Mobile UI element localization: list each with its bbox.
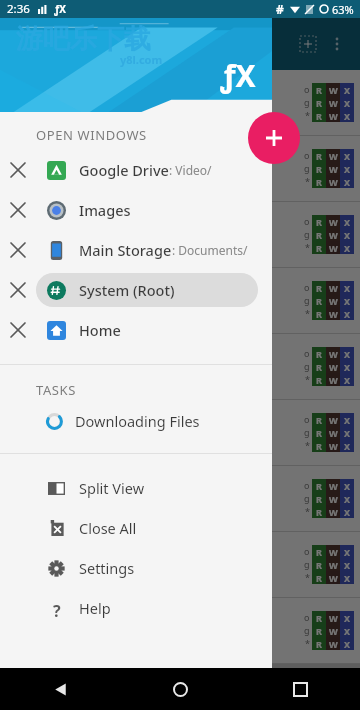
staticText: System (Root) — [79, 280, 175, 300]
staticText: X — [344, 625, 351, 637]
staticText: R — [316, 546, 322, 558]
staticText: X — [344, 572, 351, 584]
staticText: R — [316, 440, 322, 452]
staticText: R — [316, 572, 322, 584]
staticText: 63% — [332, 2, 354, 17]
staticText: R — [316, 493, 322, 505]
staticText: y8l.com — [120, 52, 163, 67]
button[interactable]: Close Google Drive — [0, 150, 272, 190]
staticText: R — [316, 163, 322, 175]
staticText: g — [304, 558, 310, 571]
staticText: g — [304, 492, 310, 505]
staticText: W — [329, 361, 338, 373]
staticText: R — [316, 374, 322, 386]
staticText: X — [344, 559, 351, 571]
staticText: g — [304, 96, 310, 109]
staticText: W — [329, 612, 338, 624]
staticText: * — [305, 439, 310, 452]
staticText: W — [329, 229, 338, 241]
staticText: o — [304, 545, 310, 558]
staticText: Main Storage — [79, 240, 172, 260]
staticText: g — [304, 228, 310, 241]
staticText: Google Drive — [79, 160, 169, 180]
button[interactable]: Home — [120, 668, 240, 710]
staticText: X — [344, 282, 351, 294]
staticText: W — [329, 625, 338, 637]
button[interactable]: ? — [0, 588, 272, 628]
button[interactable]: Close All — [0, 508, 272, 548]
staticText: X — [344, 427, 351, 439]
staticText: g — [304, 624, 310, 637]
staticText: o — [304, 215, 310, 228]
button[interactable]: o — [0, 334, 360, 399]
button[interactable]: Close System (Root) — [0, 270, 272, 310]
staticText: Home — [79, 320, 121, 340]
staticText: X — [344, 480, 351, 492]
button[interactable]: o — [0, 268, 360, 333]
button[interactable]: Close System (Root) — [0, 270, 36, 310]
staticText: X — [344, 163, 351, 175]
button[interactable]: Close Home — [0, 310, 272, 350]
staticText: W — [329, 242, 338, 254]
button[interactable]: Close Images — [0, 190, 272, 230]
button[interactable]: o — [0, 532, 360, 597]
staticText: X — [344, 84, 351, 96]
staticText: W — [329, 97, 338, 109]
staticText: R — [316, 97, 322, 109]
staticText: R — [316, 559, 322, 571]
button[interactable]: o — [0, 400, 360, 465]
staticText: X — [344, 506, 351, 518]
staticText: g — [304, 294, 310, 307]
button[interactable]: o — [0, 466, 360, 531]
staticText: R — [316, 84, 322, 96]
staticText: R — [316, 625, 322, 637]
button[interactable]: Add — [248, 112, 300, 164]
staticText: 2:36 — [7, 1, 30, 17]
staticText: * — [305, 241, 310, 254]
staticText: W — [329, 282, 338, 294]
button[interactable]: Split View — [0, 468, 272, 508]
staticText: X — [344, 361, 351, 373]
staticText: X — [344, 150, 351, 162]
staticText: R — [316, 229, 322, 241]
staticText: X — [344, 440, 351, 452]
staticText: * — [305, 637, 310, 650]
staticText: o — [304, 149, 310, 162]
button[interactable]: Recents — [240, 668, 360, 710]
staticText: Help — [79, 598, 111, 618]
staticText: ? — [53, 600, 61, 617]
button[interactable]: Settings — [0, 548, 272, 588]
staticText: R — [316, 150, 322, 162]
staticText: X — [344, 546, 351, 558]
button[interactable]: o — [0, 202, 360, 267]
staticText: : Video/ — [169, 162, 212, 178]
staticText: o — [304, 413, 310, 426]
button[interactable]: Close Main Storage — [0, 230, 36, 270]
button[interactable]: Close Main Storage — [0, 230, 272, 270]
staticText: R — [316, 176, 322, 188]
staticText: g — [304, 162, 310, 175]
staticText: R — [316, 242, 322, 254]
button[interactable]: Close Google Drive — [0, 150, 36, 190]
staticText: o — [304, 281, 310, 294]
staticText: W — [329, 427, 338, 439]
staticText: W — [329, 493, 338, 505]
button[interactable]: Back — [0, 668, 120, 710]
staticText: W — [329, 110, 338, 122]
button[interactable]: Close Home — [0, 310, 36, 350]
staticText: X — [344, 414, 351, 426]
staticText: X — [344, 374, 351, 386]
button[interactable]: Downloading Files — [0, 405, 272, 437]
button[interactable]: o — [0, 70, 360, 135]
staticText: g — [304, 360, 310, 373]
button[interactable]: o — [0, 136, 360, 201]
staticText: W — [329, 414, 338, 426]
staticText: W — [329, 150, 338, 162]
staticText: Close All — [79, 518, 137, 538]
button[interactable]: Close Images — [0, 190, 36, 230]
button[interactable]: o — [0, 598, 360, 663]
staticText: * — [305, 109, 310, 122]
staticText: R — [316, 216, 322, 228]
staticText: W — [329, 572, 338, 584]
staticText: W — [329, 216, 338, 228]
